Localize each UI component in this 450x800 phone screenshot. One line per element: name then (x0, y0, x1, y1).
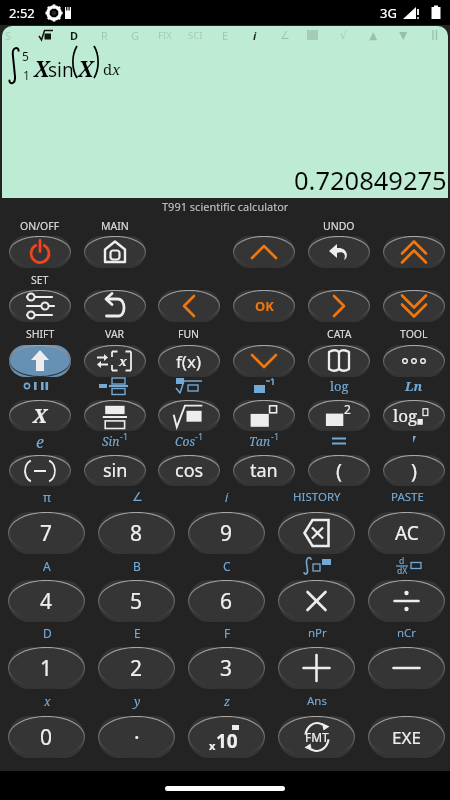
staticText: π (43, 489, 51, 505)
staticText: sin (48, 57, 74, 83)
button[interactable]: ) (383, 455, 445, 486)
staticText: 5 (130, 587, 143, 616)
staticText: ∠ (280, 29, 290, 42)
button[interactable]: ( (308, 455, 370, 486)
button[interactable]: Divide (368, 580, 445, 622)
button[interactable]: 0 (8, 716, 85, 758)
button[interactable]: AC (368, 512, 445, 554)
staticText: S (5, 28, 12, 42)
staticText: 2 (344, 401, 351, 417)
staticText: x (209, 738, 216, 753)
button[interactable]: Main (84, 236, 146, 268)
button[interactable]: Down (233, 345, 295, 377)
staticText: 0 (40, 723, 53, 752)
button[interactable]: 6 (188, 580, 265, 622)
staticText: HISTORY (293, 489, 341, 505)
button[interactable]: tan (233, 455, 295, 486)
button[interactable]: More (383, 345, 445, 377)
button[interactable]: Variable (84, 345, 146, 377)
staticText: AC (395, 520, 419, 546)
button[interactable]: Settings (9, 290, 71, 322)
staticText: Cos (175, 433, 195, 449)
staticText: SET (31, 273, 49, 287)
staticText: -1 (120, 430, 129, 442)
button[interactable]: 9 (188, 512, 265, 554)
button[interactable]: Undo (308, 236, 370, 268)
button[interactable] (158, 400, 220, 431)
staticText: A (43, 558, 51, 574)
button[interactable]: log (383, 400, 445, 431)
staticText: -1 (271, 430, 280, 442)
button[interactable]: Left (158, 290, 220, 322)
staticText: z (224, 693, 231, 709)
staticText: VAR (105, 327, 125, 341)
button[interactable]: sin (84, 455, 146, 486)
staticText: f(x) (176, 350, 202, 373)
button[interactable]: X (9, 400, 71, 431)
staticText: X (34, 55, 50, 84)
staticText: nPr (308, 625, 327, 641)
staticText: T991 scientific calculator (162, 199, 289, 214)
button[interactable]: Delete (278, 512, 355, 554)
button[interactable]: 3 (188, 647, 265, 689)
staticText: B (133, 558, 141, 574)
staticText: sin (103, 458, 128, 483)
button[interactable]: Multiply (278, 580, 355, 622)
staticText: Ans (307, 693, 327, 709)
button[interactable]: EXE (368, 716, 445, 758)
staticText: Sin (102, 433, 120, 449)
button[interactable]: Minus (368, 647, 445, 689)
button[interactable]: Plus (278, 647, 355, 689)
button[interactable]: 4 (8, 580, 85, 622)
staticText: 10 (216, 728, 238, 754)
button[interactable]: 5 (98, 580, 175, 622)
staticText: E (134, 625, 141, 641)
button[interactable]: 2 (308, 400, 370, 431)
staticText: cos (175, 458, 204, 483)
button[interactable]: Back (84, 290, 146, 322)
button[interactable]: Shift (9, 345, 71, 377)
staticText: ▲ (369, 29, 378, 42)
staticText: i (225, 489, 229, 505)
staticText: SHIFT (26, 327, 55, 341)
staticText: d (399, 555, 405, 567)
staticText: -1 (195, 430, 204, 442)
button[interactable]: Catalog (308, 345, 370, 377)
button[interactable]: 1 (8, 647, 85, 689)
button[interactable]: · (98, 716, 175, 758)
staticText: 2 (130, 654, 143, 683)
button[interactable]: 8 (98, 512, 175, 554)
button[interactable]: FMT (278, 716, 355, 758)
staticText: MAIN (101, 219, 129, 233)
staticText: y (134, 693, 141, 709)
button[interactable]: x (188, 716, 265, 758)
button[interactable]: f(x) (158, 345, 220, 377)
button[interactable]: Up (233, 236, 295, 268)
button[interactable] (9, 455, 71, 486)
button[interactable]: cos (158, 455, 220, 486)
button[interactable]: Page up (383, 236, 445, 268)
button[interactable]: 2 (98, 647, 175, 689)
staticText: TOOL (400, 327, 428, 341)
staticText: 9 (220, 519, 233, 548)
button[interactable]: Page down (383, 290, 445, 322)
staticText: 3G (380, 4, 397, 22)
staticText: i (253, 28, 257, 42)
button[interactable]: Right (308, 290, 370, 322)
staticText: FUN (178, 327, 200, 341)
button[interactable]: 7 (8, 512, 85, 554)
staticText: x (119, 352, 127, 370)
staticText: ) (411, 457, 417, 484)
button[interactable]: OK (233, 290, 295, 322)
staticText: FIX (158, 29, 172, 42)
button[interactable] (233, 400, 295, 431)
button[interactable] (84, 400, 146, 431)
staticText: X (33, 403, 47, 429)
staticText: 4 (40, 587, 53, 616)
staticText: CATA (327, 327, 352, 341)
staticText: 6 (220, 587, 233, 616)
staticText: G (131, 28, 140, 42)
button[interactable]: Power (9, 236, 71, 268)
staticText: dX (397, 565, 408, 577)
staticText: 3 (220, 654, 233, 683)
